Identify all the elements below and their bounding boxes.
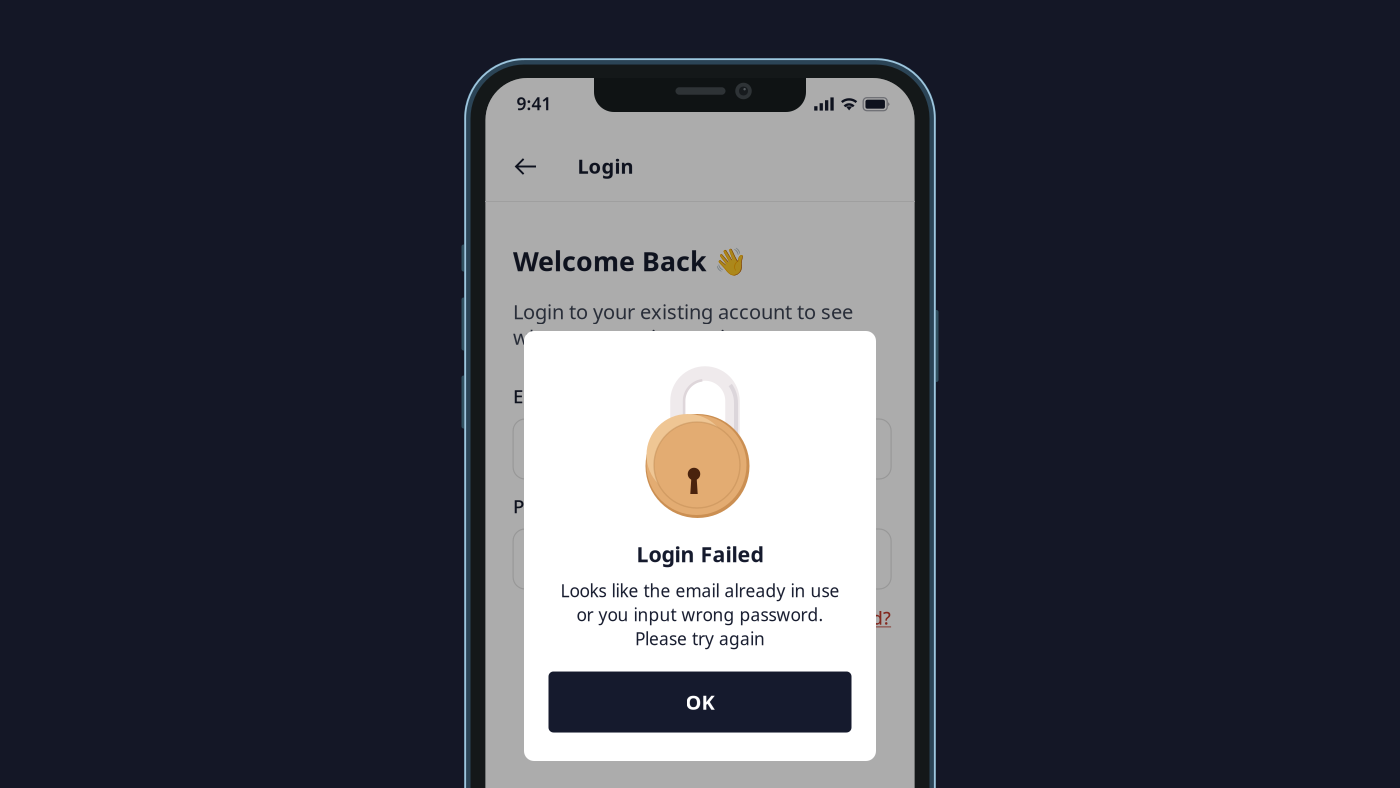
staticText: Looks like the email already in use [560, 579, 839, 602]
staticText: OK [685, 689, 714, 715]
staticText: 9:41 [516, 92, 551, 115]
button[interactable]: Forgot password? [731, 604, 891, 632]
staticText: Welcome Back 👋 [513, 243, 747, 279]
staticText: or you input wrong password. [576, 603, 823, 626]
staticText: Please try again [635, 627, 765, 650]
staticText: Login Failed [636, 540, 763, 568]
button[interactable]: Back [504, 144, 548, 188]
staticText: Login to your existing account to see [513, 298, 853, 325]
staticText: Email [513, 384, 562, 408]
staticText: Login [577, 153, 633, 179]
staticText: what we serve in our site [513, 324, 743, 350]
staticText: Password [513, 494, 599, 518]
button[interactable]: OK [548, 671, 851, 732]
staticText: Forgot password? [742, 606, 891, 629]
